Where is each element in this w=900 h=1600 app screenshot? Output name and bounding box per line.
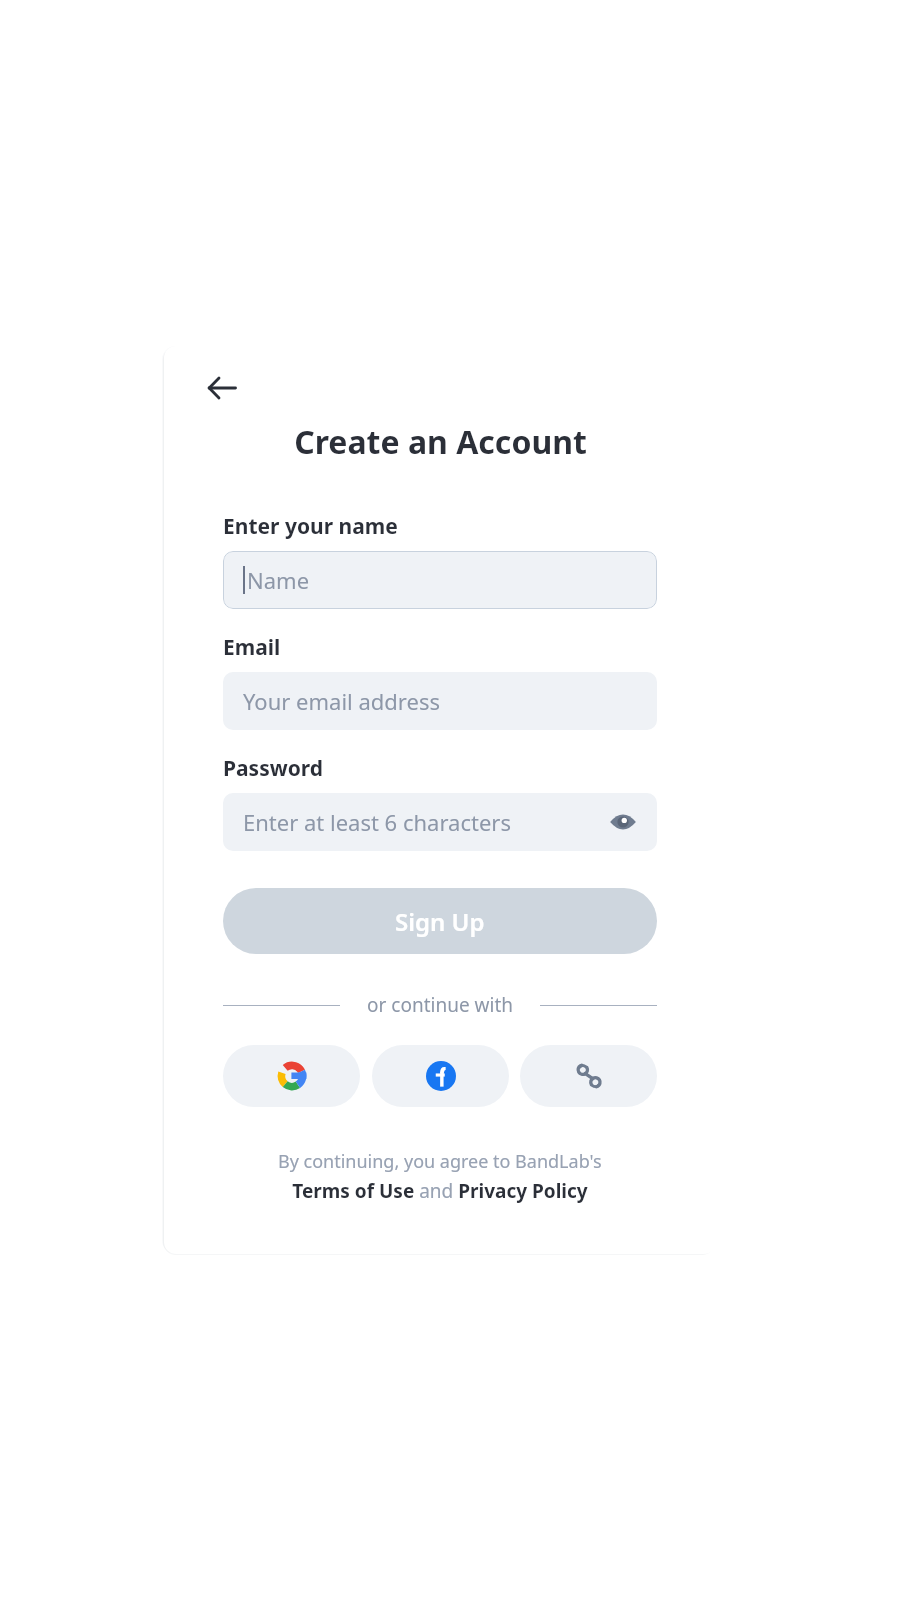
button[interactable]: Name	[223, 551, 657, 609]
button[interactable]: Sign up with Facebook	[372, 1045, 509, 1107]
button[interactable]: Show password	[605, 804, 641, 840]
button[interactable]: Enter at least 6 characters	[223, 793, 657, 851]
staticText: Your email address	[243, 686, 440, 716]
button[interactable]: Your email address	[223, 672, 657, 730]
staticText: Enter your name	[223, 512, 398, 541]
staticText: Name	[247, 565, 310, 595]
button[interactable]: Back	[200, 366, 244, 410]
staticText: Password	[223, 754, 324, 783]
staticText: or continue with	[367, 992, 513, 1018]
staticText: Enter at least 6 characters	[243, 807, 511, 837]
staticText: Create an Account	[294, 420, 587, 464]
staticText: Email	[223, 633, 281, 662]
staticText: By continuing, you agree to BandLab's	[278, 1149, 602, 1174]
staticText: Terms of Use and Privacy Policy	[292, 1178, 588, 1204]
button[interactable]: Terms of Use and Privacy Policy	[292, 1178, 588, 1204]
button[interactable]: Sign up with phone number	[520, 1045, 657, 1107]
button[interactable]: Sign Up	[223, 888, 657, 954]
staticText: Sign Up	[395, 905, 485, 938]
button[interactable]: Sign up with Google	[223, 1045, 360, 1107]
